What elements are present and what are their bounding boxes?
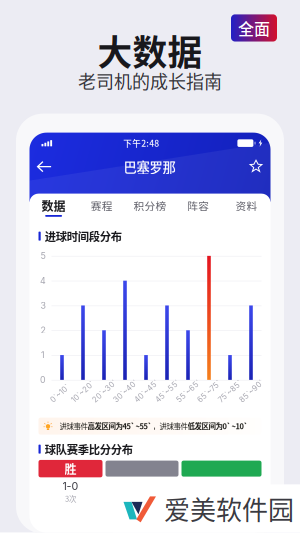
button[interactable]: Back [29, 154, 66, 180]
button[interactable]: 资料 [222, 193, 270, 221]
staticText: 老司机的成长指南 [78, 68, 222, 94]
staticText: 胜 [64, 460, 76, 477]
staticText: 0 [40, 375, 46, 385]
staticText: 4 [40, 275, 46, 286]
staticText: 1 [41, 350, 45, 360]
staticText: 进球时间段分布 [45, 228, 122, 244]
staticText: 球队赛季比分分布 [45, 441, 133, 457]
staticText: 40`~45` [132, 398, 161, 407]
button[interactable]: 阵容 [174, 193, 222, 221]
staticText: 下午2:48 [123, 137, 159, 149]
staticText: 阵容 [187, 198, 209, 213]
staticText: 赛程 [91, 198, 113, 213]
staticText: 55`~65` [174, 398, 203, 407]
staticText: 10`~20` [69, 398, 96, 407]
button[interactable]: 积分榜 [126, 193, 174, 221]
button[interactable]: 数据 [29, 193, 78, 221]
staticText: 数据 [42, 197, 66, 214]
staticText: 积分榜 [133, 198, 166, 213]
staticText: 0`~10` [48, 398, 70, 407]
staticText: 大数据 [97, 25, 202, 76]
staticText: 全面 [238, 16, 270, 40]
staticText: 爱美软件园 [164, 489, 294, 527]
staticText: 45`~55` [153, 398, 182, 407]
staticText: 85`~90` [237, 398, 266, 407]
staticText: 3 [40, 300, 45, 311]
staticText: 2 [40, 325, 45, 336]
staticText: 30`~40` [111, 398, 140, 407]
staticText: 巴塞罗那 [123, 157, 175, 176]
staticText: 20`~30` [90, 398, 119, 407]
staticText: 资料 [235, 198, 257, 213]
staticText: 5 [40, 251, 45, 261]
staticText: 65`~75` [195, 398, 223, 407]
button[interactable]: 赛程 [78, 193, 126, 221]
button[interactable]: Favorite [232, 154, 270, 180]
staticText: 75`~85` [216, 398, 244, 407]
staticText: 3次 [65, 493, 76, 504]
staticText: 1-0 [62, 480, 78, 492]
staticText: 进球事件高发区间为45`~55`，进球事件低发区间为0`~10` [59, 421, 248, 431]
